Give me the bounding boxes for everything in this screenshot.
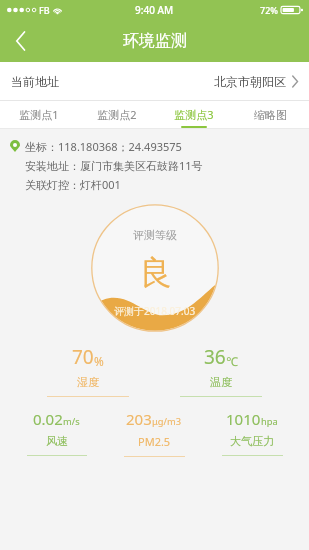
- staticText: 评测于2018.07.03: [114, 304, 196, 318]
- button[interactable]: 1010: [203, 409, 301, 456]
- staticText: ℃: [226, 353, 238, 369]
- staticText: 9:40 AM: [135, 3, 174, 17]
- staticText: 203: [126, 409, 152, 429]
- staticText: 良: [139, 252, 172, 294]
- staticText: 0.02: [33, 409, 63, 429]
- staticText: 监测点2: [97, 107, 137, 122]
- staticText: 风速: [46, 434, 68, 448]
- staticText: 关联灯控：灯杆001: [25, 177, 121, 192]
- staticText: 大气压力: [230, 434, 274, 448]
- button[interactable]: 监测点1: [0, 101, 78, 128]
- staticText: 1010: [226, 409, 261, 429]
- staticText: hpa: [261, 415, 278, 428]
- staticText: PM2.5: [138, 434, 171, 449]
- button[interactable]: 缩略图: [232, 101, 309, 128]
- button[interactable]: 当前地址: [0, 62, 309, 100]
- button[interactable]: 监测点2: [78, 101, 155, 128]
- staticText: μg/m3: [152, 415, 182, 428]
- staticText: 监测点3: [174, 107, 214, 122]
- staticText: 湿度: [77, 375, 99, 389]
- staticText: %: [94, 353, 104, 369]
- staticText: 36: [204, 344, 226, 370]
- button[interactable]: 0.02: [8, 409, 105, 456]
- staticText: 北京市朝阳区: [214, 74, 286, 89]
- staticText: 评测等级: [133, 228, 177, 242]
- button[interactable]: Back: [0, 20, 42, 62]
- staticText: 坐标：118.180368；24.493575: [25, 139, 182, 154]
- staticText: 环境监测: [123, 31, 187, 51]
- button[interactable]: 36: [154, 344, 287, 397]
- staticText: FB: [39, 4, 50, 16]
- staticText: m/s: [63, 415, 80, 428]
- staticText: 缩略图: [254, 108, 287, 122]
- staticText: 70: [72, 344, 94, 370]
- button[interactable]: 203: [105, 409, 203, 457]
- staticText: 监测点1: [19, 107, 59, 122]
- staticText: 当前地址: [11, 74, 59, 89]
- button[interactable]: 70: [22, 344, 154, 397]
- staticText: 安装地址：厦门市集美区石鼓路11号: [25, 158, 203, 173]
- button[interactable]: 监测点3: [155, 101, 232, 128]
- staticText: 温度: [210, 375, 232, 389]
- staticText: 72%: [260, 4, 278, 16]
